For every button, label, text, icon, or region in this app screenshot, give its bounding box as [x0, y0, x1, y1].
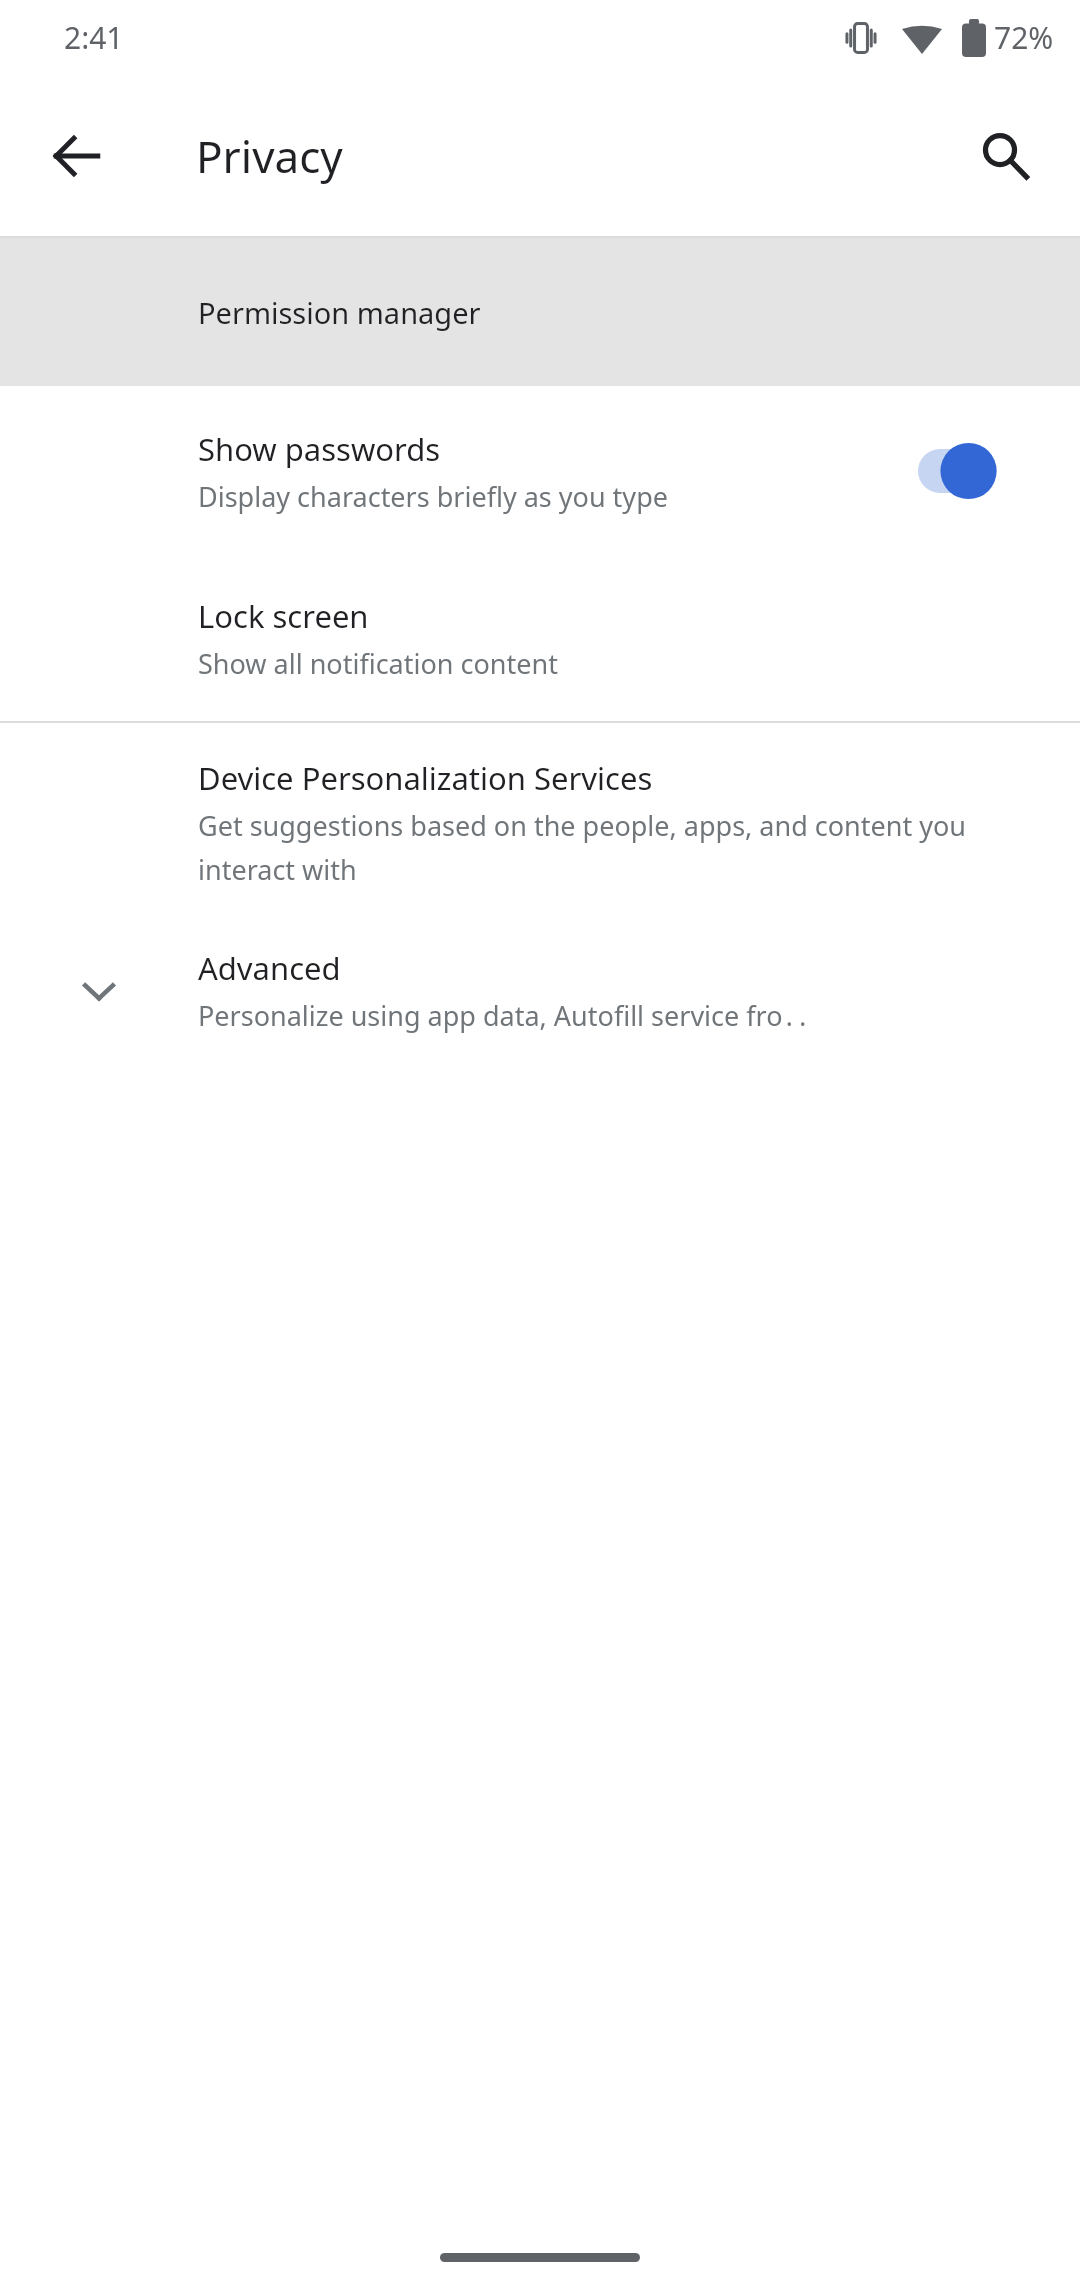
- staticText: Personalize using app data, Autofill ser…: [198, 997, 810, 1034]
- staticText: Get suggestions based on the people, app…: [198, 807, 1044, 887]
- button[interactable]: Show passwords: [0, 386, 1080, 556]
- staticText: Show all notification content: [198, 645, 558, 682]
- staticText: Device Personalization Services: [198, 757, 653, 799]
- button[interactable]: Navigate up: [22, 101, 132, 211]
- staticText: Display characters briefly as you type: [198, 478, 668, 515]
- staticText: Advanced: [198, 947, 341, 989]
- button[interactable]: Lock screen: [0, 556, 1080, 721]
- staticText: Lock screen: [198, 595, 369, 637]
- button[interactable]: Show passwords toggle: [918, 433, 1010, 509]
- button[interactable]: Search: [950, 101, 1060, 211]
- staticText: 2:41: [64, 17, 124, 58]
- staticText: Privacy: [196, 126, 343, 186]
- staticText: Show passwords: [198, 428, 441, 470]
- staticText: Permission manager: [198, 293, 481, 332]
- staticText: 72%: [994, 17, 1054, 58]
- button[interactable]: Device Personalization Services: [0, 723, 1080, 917]
- button[interactable]: Permission manager: [0, 238, 1080, 386]
- button[interactable]: Advanced: [0, 917, 1080, 1064]
